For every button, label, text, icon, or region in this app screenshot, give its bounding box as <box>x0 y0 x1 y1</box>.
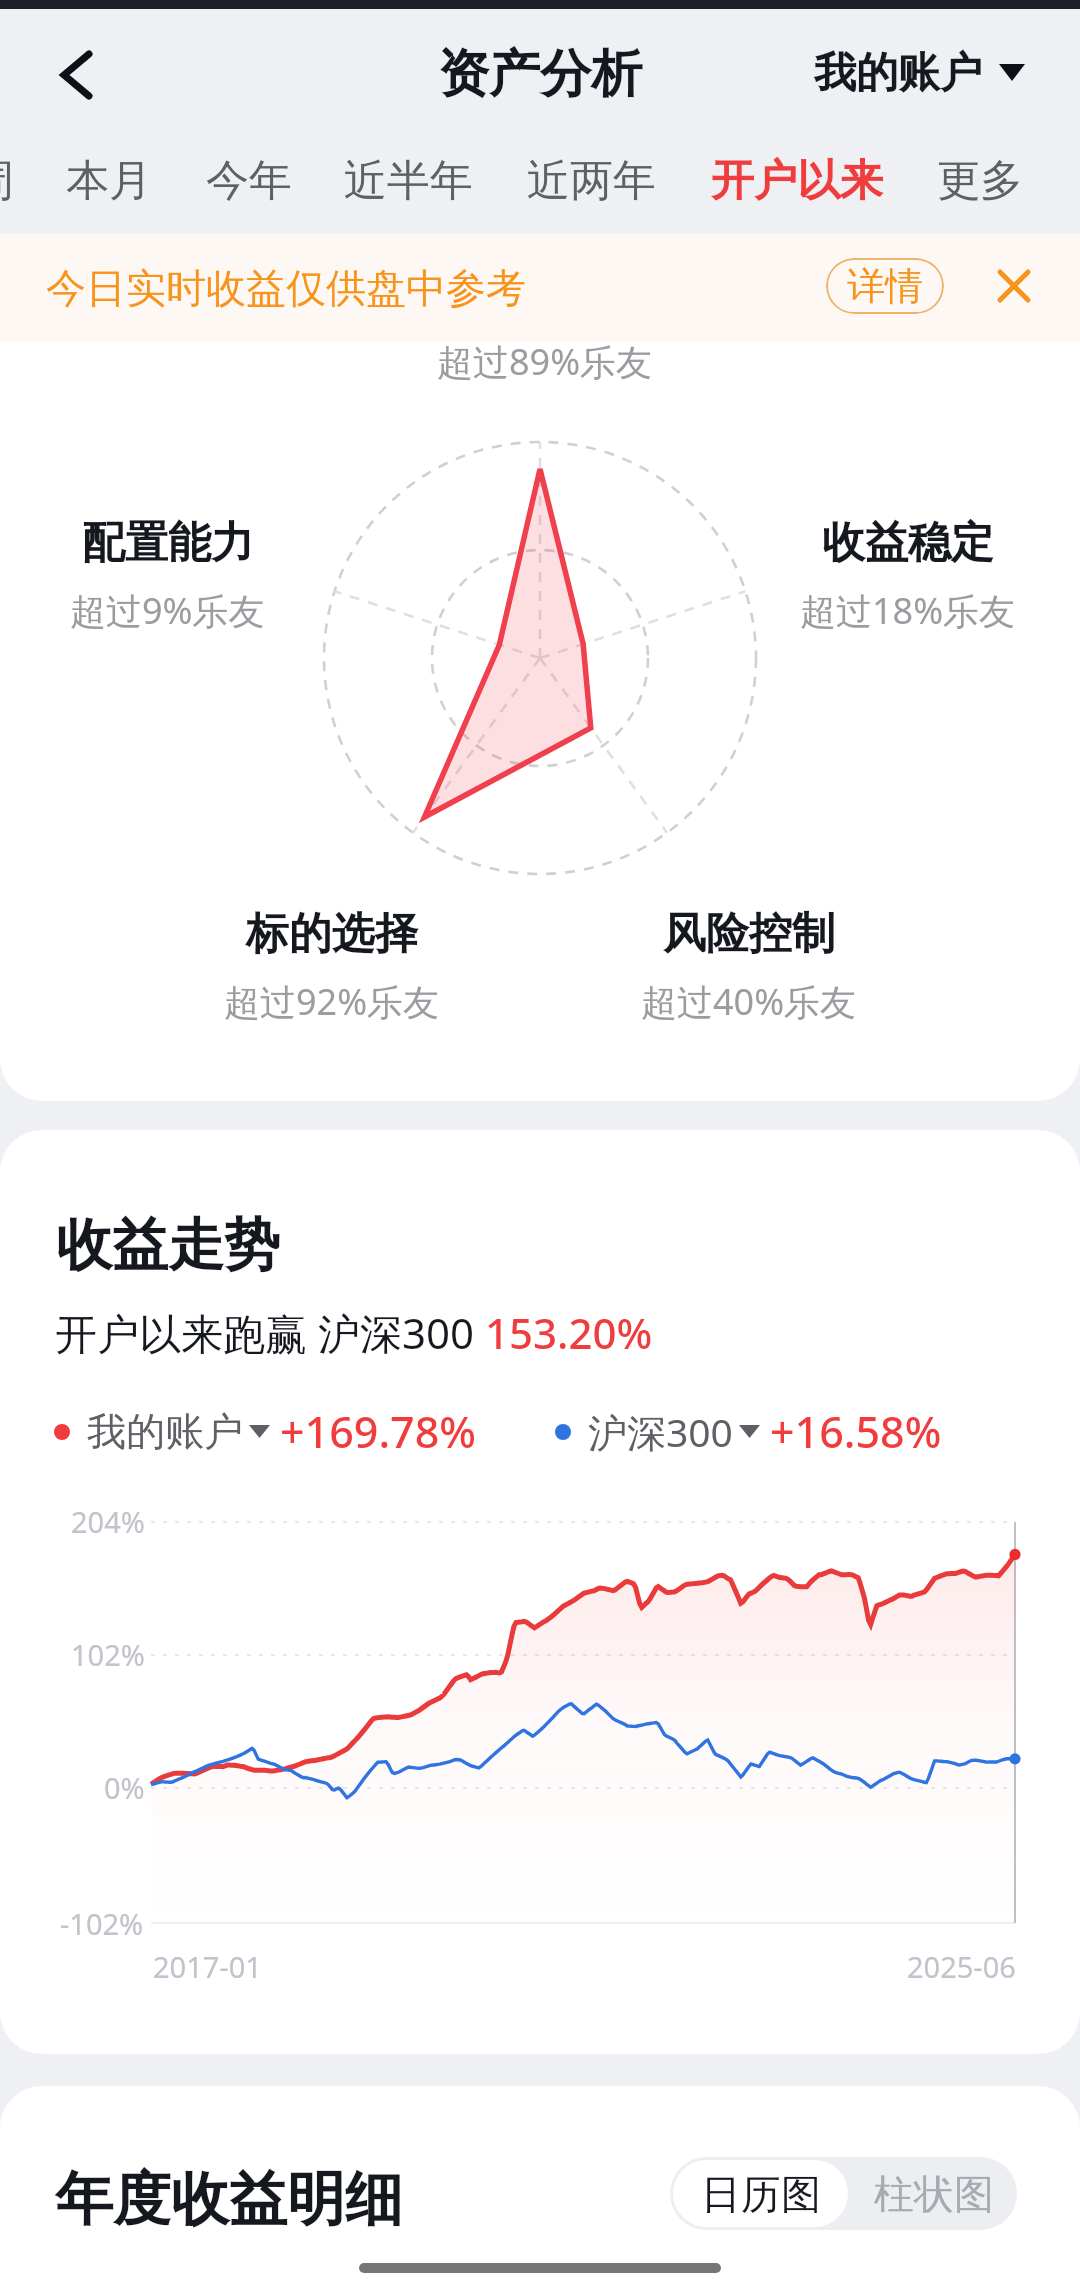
staticText: 近两年 <box>527 154 656 208</box>
staticText: 开户以来 <box>711 154 883 208</box>
staticText: 超过92%乐友 <box>224 977 440 1026</box>
staticText: 超过40%乐友 <box>641 977 857 1026</box>
button[interactable]: 近半年 <box>303 127 513 234</box>
staticText: 配置能力 <box>82 516 254 570</box>
staticText: 我的账户 <box>87 1407 243 1456</box>
staticText: 2025-06 <box>907 1947 1016 1986</box>
button[interactable]: 柱状图 <box>851 2157 1017 2230</box>
button[interactable]: Close <box>980 252 1048 320</box>
staticText: 更多 <box>937 154 1023 208</box>
staticText: 收益走势 <box>56 1210 280 1281</box>
button[interactable]: 近两年 <box>486 127 696 234</box>
button[interactable]: 我的账户 <box>814 47 1025 100</box>
button[interactable]: 更多 <box>910 127 1050 234</box>
staticText: 0% <box>104 1768 145 1807</box>
staticText: 102% <box>71 1635 145 1674</box>
staticText: 153.20% <box>485 1304 653 1361</box>
staticText: 年度收益明细 <box>55 2163 403 2236</box>
staticText: 今年 <box>206 154 292 208</box>
staticText: +169.78% <box>280 1402 476 1461</box>
staticText: 柱状图 <box>874 2169 994 2219</box>
button[interactable]: 日历图 <box>673 2160 848 2227</box>
staticText: 资产分析 <box>438 42 642 106</box>
staticText: -102% <box>60 1904 144 1943</box>
staticText: 我的账户 <box>814 47 982 100</box>
button[interactable]: 详情 <box>826 258 944 314</box>
staticText: 沪深300 <box>588 1405 733 1458</box>
button[interactable]: 沪深300 <box>555 1402 942 1461</box>
staticText: +16.58% <box>770 1402 942 1461</box>
staticText: 标的选择 <box>246 907 418 961</box>
button[interactable]: 本月 <box>44 127 174 234</box>
staticText: 今日实时收益仅供盘中参考 <box>46 263 526 313</box>
staticText: 超过89%乐友 <box>437 342 653 386</box>
staticText: 风险控制 <box>663 907 835 961</box>
button[interactable]: 开户以来 <box>682 127 912 234</box>
button[interactable]: 今年 <box>184 127 314 234</box>
staticText: 2017-01 <box>153 1947 262 1986</box>
staticText: 开户以来跑赢 沪深300 <box>55 1304 485 1361</box>
staticText: 详情 <box>847 262 923 310</box>
staticText: 近半年 <box>344 154 473 208</box>
staticText: 周 <box>0 154 14 208</box>
button[interactable]: 周 <box>0 127 41 234</box>
staticText: 超过9%乐友 <box>70 586 265 635</box>
staticText: 收益稳定 <box>822 516 994 570</box>
button[interactable]: 我的账户 <box>54 1402 476 1461</box>
button[interactable]: Back <box>18 20 114 116</box>
staticText: 本月 <box>66 154 152 208</box>
staticText: 超过18%乐友 <box>800 586 1016 635</box>
staticText: 204% <box>71 1502 145 1541</box>
staticText: 日历图 <box>701 2169 821 2219</box>
